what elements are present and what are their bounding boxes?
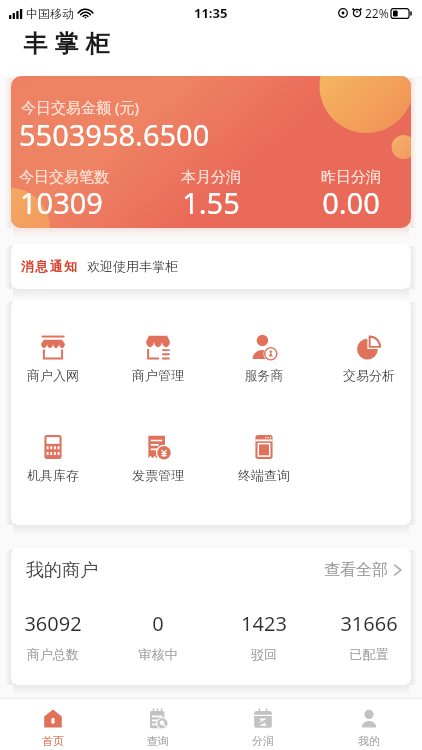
- staticText: 36092: [11, 610, 123, 637]
- staticText: 分润: [252, 734, 274, 748]
- button[interactable]: Profile: [316, 699, 422, 750]
- staticText: 今日交易金额 (元): [21, 97, 139, 117]
- button[interactable]: 今日交易金额 (元): [11, 76, 411, 228]
- staticText: 0.00: [281, 183, 411, 222]
- button[interactable]: [11, 321, 97, 383]
- button[interactable]: [324, 606, 411, 664]
- staticText: 中国移动: [26, 6, 74, 21]
- staticText: 丰掌柜: [20, 29, 113, 59]
- staticText: 商户入网: [11, 367, 123, 383]
- staticText: 0: [88, 610, 228, 637]
- button[interactable]: [325, 321, 411, 383]
- button[interactable]: Home: [0, 699, 105, 750]
- button[interactable]: [11, 421, 97, 483]
- staticText: 驳回: [194, 646, 334, 662]
- staticText: 查看全部: [324, 560, 388, 580]
- button[interactable]: [113, 606, 203, 664]
- staticText: 本月分润: [141, 168, 281, 187]
- staticText: 发票管理: [88, 467, 228, 483]
- staticText: 消息通知: [21, 258, 79, 274]
- staticText: 昨日分润: [281, 168, 411, 187]
- staticText: 5503958.6500: [19, 115, 210, 154]
- staticText: 今日交易笔数: [19, 168, 109, 187]
- staticText: 11:35: [194, 4, 228, 22]
- button[interactable]: [114, 321, 202, 383]
- button[interactable]: [11, 606, 98, 664]
- staticText: 首页: [42, 734, 64, 748]
- staticText: 商户总数: [11, 646, 123, 662]
- staticText: 10309: [20, 183, 103, 222]
- staticText: 22%: [365, 5, 389, 21]
- staticText: 已配置: [299, 646, 411, 662]
- staticText: 我的: [358, 734, 380, 748]
- staticText: 服务商: [194, 367, 334, 383]
- button[interactable]: Profit: [210, 699, 316, 750]
- staticText: 终端查询: [194, 467, 334, 483]
- button[interactable]: [220, 321, 308, 383]
- staticText: 交易分析: [299, 367, 411, 383]
- staticText: 1423: [194, 610, 334, 637]
- staticText: 查询: [147, 734, 169, 748]
- staticText: 31666: [299, 610, 411, 637]
- staticText: 商户管理: [88, 367, 228, 383]
- staticText: 我的商户: [26, 559, 98, 582]
- button[interactable]: 查看全部: [324, 554, 411, 580]
- button[interactable]: Query: [105, 699, 210, 750]
- button[interactable]: [114, 421, 202, 483]
- button[interactable]: [219, 606, 309, 664]
- button[interactable]: 消息通知: [11, 244, 411, 289]
- button[interactable]: [220, 421, 308, 483]
- staticText: 1.55: [141, 183, 281, 222]
- staticText: 审核中: [88, 646, 228, 662]
- staticText: 机具库存: [11, 467, 123, 483]
- staticText: 欢迎使用丰掌柜: [87, 258, 178, 274]
